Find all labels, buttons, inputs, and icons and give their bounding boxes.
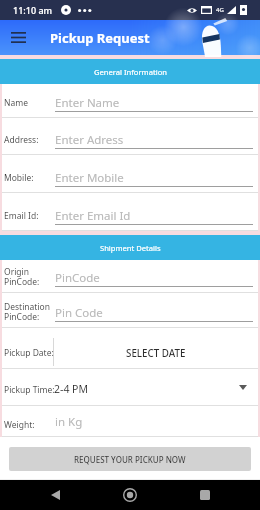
button[interactable]: Pickup Date: <box>2 328 258 369</box>
staticText: Enter Email Id <box>55 208 131 224</box>
staticText: 11:10 am <box>13 4 53 16</box>
staticText: 2-4 PM <box>54 382 88 396</box>
button[interactable]: Origin PinCode: <box>2 260 258 293</box>
staticText: Enter Mobile <box>55 170 124 186</box>
button[interactable]: Weight: <box>2 406 258 437</box>
staticText: REQUEST YOUR PICKUP NOW <box>74 454 186 465</box>
staticText: Pickup Request <box>50 29 150 47</box>
button[interactable]: Pickup Time: <box>2 369 258 406</box>
button[interactable]: Menu <box>0 20 36 55</box>
staticText: Mobile: <box>4 172 34 184</box>
button[interactable]: Destination PinCode: <box>2 293 258 328</box>
staticText: Pin Code <box>55 305 103 321</box>
staticText: Shipment Details <box>100 243 161 253</box>
staticText: PinCode <box>55 270 100 286</box>
staticText: Origin PinCode: <box>4 266 40 287</box>
staticText: Name <box>4 97 28 109</box>
button[interactable]: Back <box>35 480 75 510</box>
staticText: Email Id: <box>4 210 39 222</box>
staticText: Pickup Time: <box>4 384 55 396</box>
staticText: Enter Name <box>55 95 120 111</box>
button[interactable]: Home <box>110 480 150 510</box>
staticText: Weight: <box>4 419 35 431</box>
staticText: Address: <box>4 134 39 146</box>
button[interactable]: REQUEST YOUR PICKUP NOW <box>9 447 251 471</box>
button[interactable]: Name <box>2 84 258 118</box>
staticText: Pickup Date: <box>4 347 54 359</box>
staticText: Enter Adress <box>55 132 124 148</box>
button[interactable]: Email Id: <box>2 193 258 231</box>
staticText: Destination PinCode: <box>4 301 51 322</box>
staticText: SELECT DATE <box>126 347 186 360</box>
button[interactable]: Address: <box>2 118 258 155</box>
staticText: 4G <box>216 6 224 14</box>
staticText: in Kg <box>55 414 83 430</box>
staticText: General Information <box>94 67 167 77</box>
button[interactable]: Mobile: <box>2 155 258 193</box>
button[interactable]: Recent apps <box>185 480 225 510</box>
other: Choose pickup time <box>239 385 247 390</box>
